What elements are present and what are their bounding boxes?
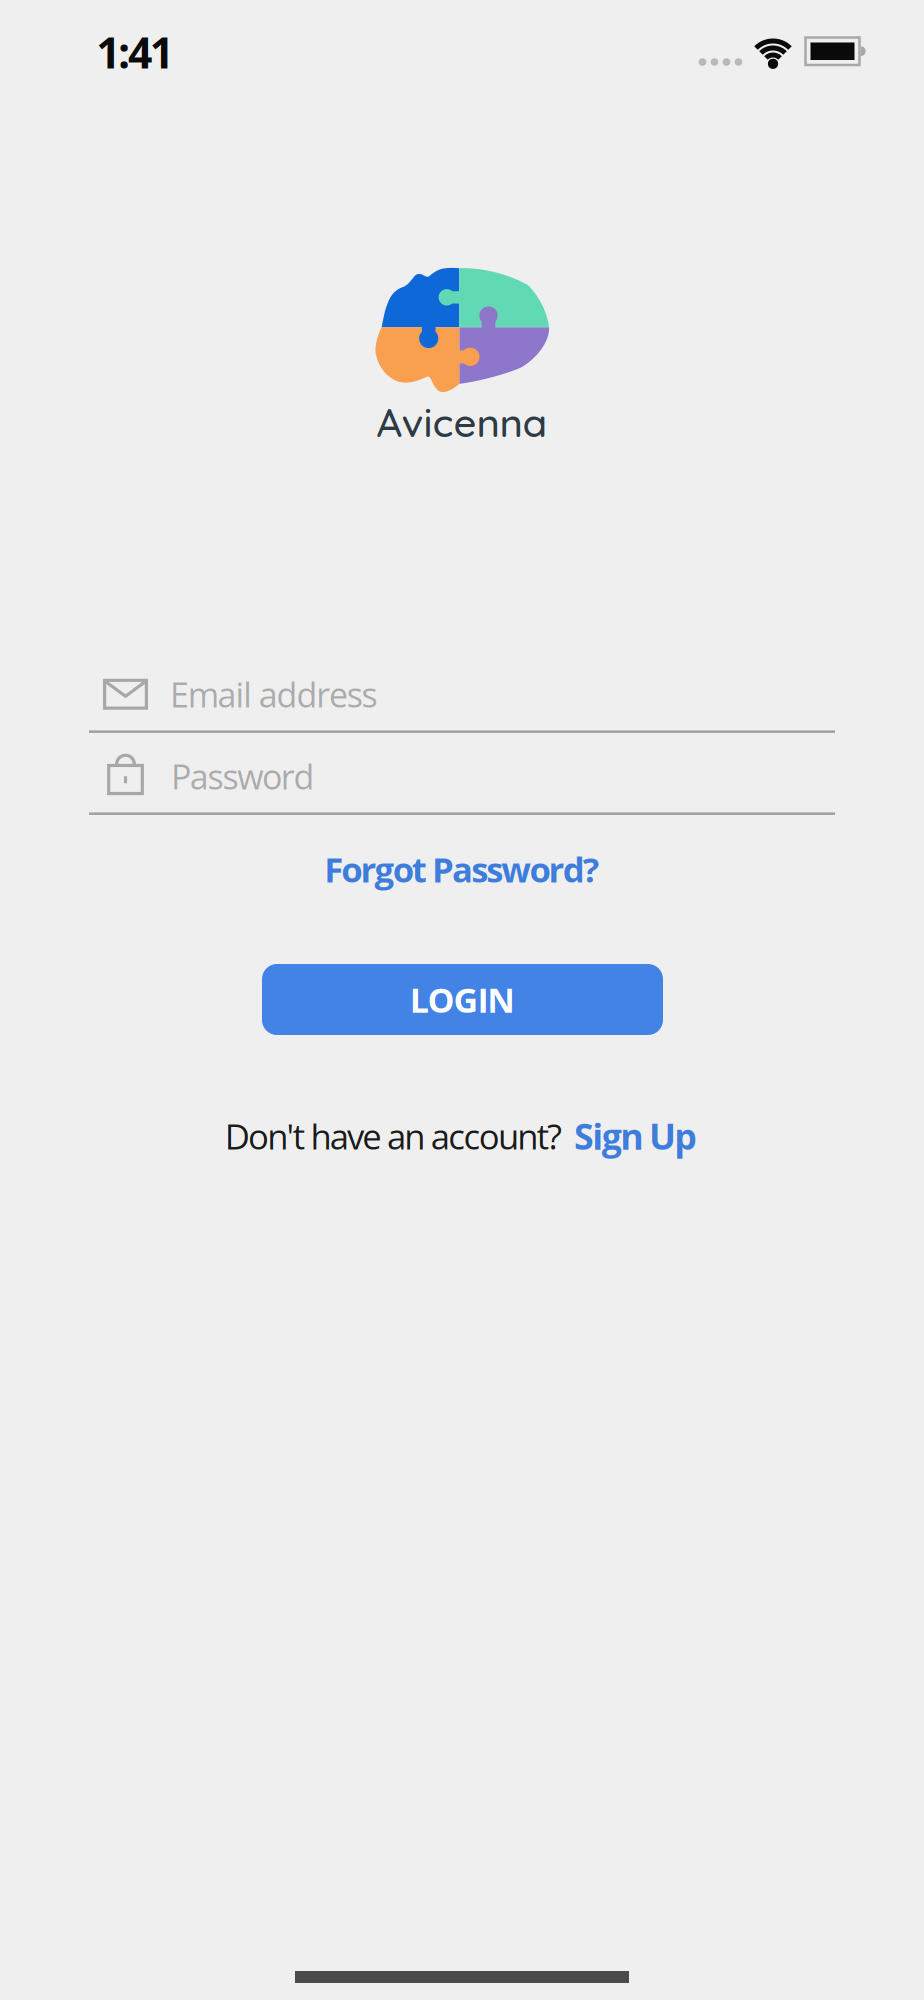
- staticText: Avicenna: [376, 397, 547, 447]
- staticText: Sign Up: [574, 1112, 697, 1160]
- staticText: Forgot Password?: [324, 845, 600, 893]
- staticText: Don't have an account?: [225, 1112, 562, 1160]
- button[interactable]: Sign Up: [574, 1112, 697, 1160]
- staticText: Password: [171, 753, 315, 799]
- button[interactable]: Email address: [89, 671, 835, 733]
- staticText: LOGIN: [410, 976, 515, 1023]
- button[interactable]: Forgot Password?: [324, 845, 600, 893]
- staticText: 1:41: [96, 23, 174, 81]
- button[interactable]: Password: [89, 753, 835, 815]
- staticText: Email address: [170, 671, 378, 717]
- button[interactable]: LOGIN: [262, 964, 663, 1035]
